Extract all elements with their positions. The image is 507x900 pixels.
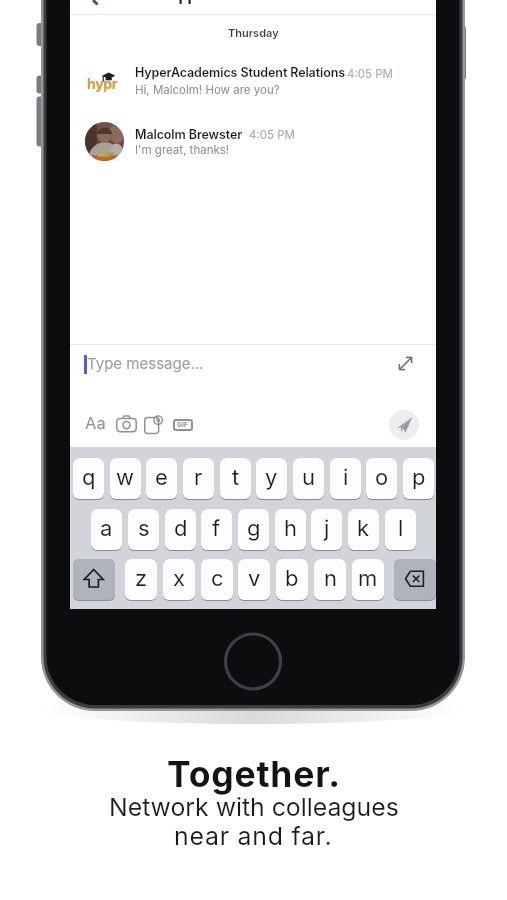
- staticText: a: [100, 515, 113, 542]
- staticText: Together.: [167, 753, 341, 796]
- staticText: w: [116, 464, 135, 491]
- staticText: p: [412, 464, 426, 491]
- button[interactable]: [70, 112, 436, 170]
- button[interactable]: [389, 410, 419, 440]
- staticText: m: [358, 565, 378, 592]
- button[interactable]: v: [238, 559, 270, 600]
- staticText: GIF: [177, 421, 189, 429]
- staticText: hypr: [87, 75, 118, 92]
- button[interactable]: z: [125, 559, 157, 600]
- staticText: 4:05 PM: [249, 128, 295, 142]
- staticText: z: [135, 565, 148, 592]
- staticText: h: [284, 515, 298, 542]
- button[interactable]: Aa: [85, 413, 106, 433]
- staticText: g: [247, 515, 261, 542]
- staticText: Hi, Malcolm! How are you?: [135, 83, 280, 97]
- button[interactable]: h: [275, 509, 306, 550]
- button[interactable]: [73, 559, 115, 600]
- staticText: r: [194, 464, 203, 491]
- staticText: Aa: [85, 413, 106, 433]
- button[interactable]: Malcolm Brewster: [135, 127, 243, 142]
- staticText: u: [302, 464, 316, 491]
- staticText: d: [174, 515, 188, 542]
- staticText: Malcolm Brewster: [135, 127, 243, 142]
- button[interactable]: w: [110, 458, 141, 499]
- button[interactable]: f: [201, 509, 232, 550]
- button[interactable]: l: [385, 509, 416, 550]
- staticText: y: [265, 464, 278, 491]
- button[interactable]: e: [146, 458, 177, 499]
- button[interactable]: [116, 415, 137, 433]
- button[interactable]: c: [201, 559, 233, 600]
- staticText: f: [212, 515, 221, 542]
- button[interactable]: t: [220, 458, 251, 499]
- button[interactable]: d: [165, 509, 196, 550]
- staticText: Type message...: [87, 354, 204, 372]
- staticText: b: [285, 565, 299, 592]
- staticText: x: [173, 565, 186, 592]
- staticText: c: [211, 565, 224, 592]
- staticText: 4:05 PM: [347, 67, 393, 81]
- staticText: near and far.: [174, 821, 333, 851]
- button[interactable]: p: [403, 458, 434, 499]
- button[interactable]: [394, 559, 436, 600]
- staticText: j: [324, 515, 330, 542]
- staticText: Thursday: [228, 26, 279, 39]
- button[interactable]: GIF: [173, 419, 193, 431]
- button[interactable]: [85, 122, 124, 161]
- staticText: e: [155, 464, 168, 491]
- button[interactable]: a: [91, 509, 122, 550]
- staticText: l: [398, 515, 404, 542]
- button[interactable]: y: [256, 458, 287, 499]
- button[interactable]: r: [183, 458, 214, 499]
- staticText: HyperAcademics Student Relations: [135, 65, 345, 80]
- button[interactable]: j: [311, 509, 342, 550]
- button[interactable]: m: [352, 559, 384, 600]
- staticText: I'm great, thanks!: [135, 143, 230, 157]
- button[interactable]: g: [238, 509, 269, 550]
- button[interactable]: x: [163, 559, 195, 600]
- button[interactable]: k: [348, 509, 379, 550]
- button[interactable]: u: [293, 458, 324, 499]
- staticText: s: [138, 515, 150, 542]
- staticText: Network with colleagues: [109, 792, 399, 822]
- staticText: k: [357, 515, 370, 542]
- button[interactable]: s: [128, 509, 159, 550]
- button[interactable]: [70, 345, 436, 403]
- staticText: o: [375, 464, 389, 491]
- button[interactable]: i: [330, 458, 361, 499]
- button[interactable]: o: [366, 458, 397, 499]
- button[interactable]: HyperAcademics Student Relations: [135, 65, 345, 80]
- button[interactable]: [144, 414, 165, 435]
- staticText: q: [82, 464, 96, 491]
- button[interactable]: [70, 52, 436, 110]
- staticText: n: [324, 565, 337, 592]
- staticText: t: [232, 464, 240, 491]
- staticText: i: [343, 464, 349, 491]
- staticText: v: [248, 565, 261, 592]
- button[interactable]: n: [314, 559, 346, 600]
- button[interactable]: q: [73, 458, 104, 499]
- button[interactable]: b: [276, 559, 308, 600]
